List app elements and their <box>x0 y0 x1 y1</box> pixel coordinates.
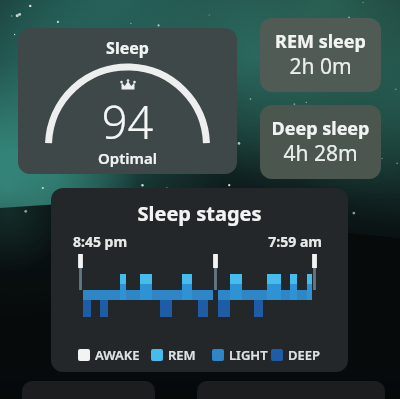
staticText: 2h 0m <box>260 52 381 81</box>
staticText: REM sleep <box>260 29 381 54</box>
staticText: Sleep <box>18 37 237 59</box>
staticText: Sleep stages <box>51 200 348 227</box>
staticText: REM <box>168 346 196 364</box>
staticText: DEEP <box>288 346 321 364</box>
button[interactable]: Deep sleep <box>260 105 381 179</box>
staticText: Deep sleep <box>260 116 381 141</box>
staticText: 94 <box>18 91 237 152</box>
staticText: Optimal <box>18 148 237 168</box>
button[interactable]: REM sleep <box>260 18 381 92</box>
staticText: LIGHT <box>229 346 268 364</box>
staticText: 7:59 am <box>222 232 322 251</box>
button[interactable]: Sleep <box>18 28 237 174</box>
button[interactable]: Sleep stages <box>51 188 348 372</box>
staticText: 4h 28m <box>260 139 381 168</box>
staticText: AWAKE <box>95 346 140 364</box>
staticText: 8:45 pm <box>73 232 173 251</box>
